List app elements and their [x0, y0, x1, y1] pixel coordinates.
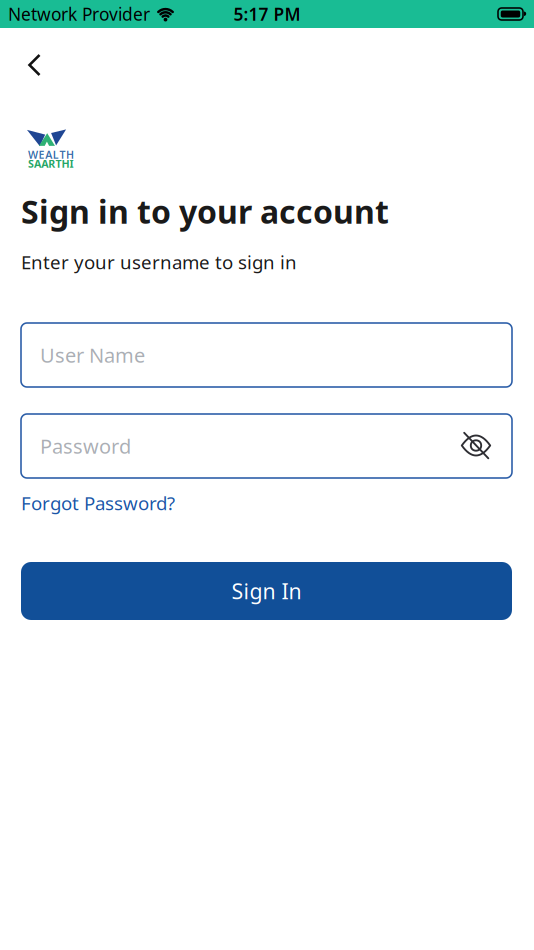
button[interactable]: Password	[21, 414, 512, 478]
button[interactable]: Back	[19, 45, 59, 85]
staticText: Sign In	[231, 577, 301, 605]
button[interactable]: Sign In	[21, 562, 512, 620]
button[interactable]: User Name	[21, 323, 512, 387]
button[interactable]: Show password	[461, 432, 491, 459]
button[interactable]: Forgot Password?	[21, 490, 175, 515]
staticText: WEALTH	[28, 147, 74, 162]
staticText: Forgot Password?	[21, 490, 175, 515]
staticText: SAARTHI	[28, 156, 74, 171]
staticText: Network Provider	[8, 2, 150, 25]
staticText: 5:17 PM	[233, 2, 300, 25]
staticText: Sign in to your account	[21, 190, 389, 232]
staticText: User Name	[40, 342, 145, 368]
staticText: Password	[40, 433, 131, 459]
staticText: Enter your username to sign in	[21, 249, 297, 274]
